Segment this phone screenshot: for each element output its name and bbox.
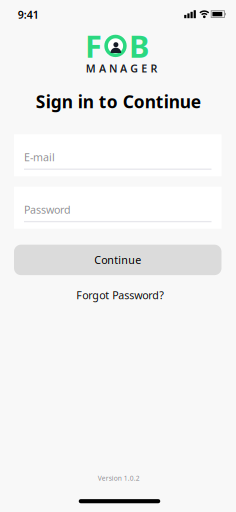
staticText: E-mail [24,150,55,164]
button[interactable]: Forgot Password? [70,282,170,308]
staticText: MANAGER [86,61,157,75]
staticText: F [85,25,102,66]
staticText: 9:41 [18,7,39,22]
button[interactable]: Password [14,187,221,229]
staticText: Forgot Password? [76,288,164,302]
staticText: Version 1.0.2 [98,474,140,483]
staticText: Password [24,202,71,217]
button[interactable]: Continue [14,245,221,275]
staticText: B [129,25,149,66]
staticText: Continue [94,253,141,267]
staticText: Sign in to Continue [36,90,201,113]
button[interactable]: E-mail [14,134,221,176]
